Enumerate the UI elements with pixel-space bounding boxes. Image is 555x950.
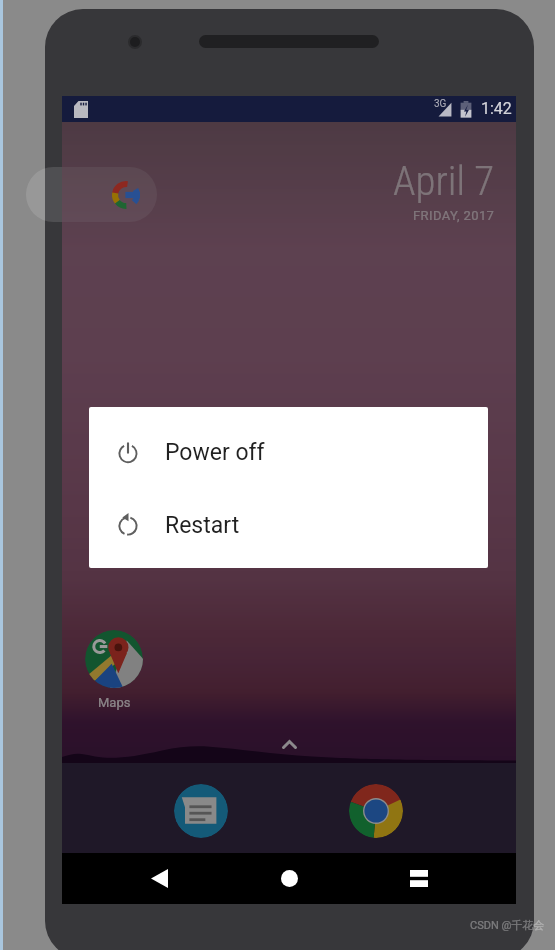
staticText: 3G xyxy=(434,98,447,110)
staticText: Maps xyxy=(98,695,131,710)
button[interactable]: Messages xyxy=(174,784,228,838)
staticText: CSDN @千花会 xyxy=(470,918,545,932)
button[interactable]: Back xyxy=(132,853,186,904)
button[interactable]: Chrome xyxy=(349,784,403,838)
button[interactable]: Home xyxy=(262,853,316,904)
staticText: April 7 xyxy=(393,157,495,205)
button[interactable]: Recent apps xyxy=(392,853,446,904)
staticText: FRIDAY, 2017 xyxy=(413,208,495,223)
staticText: Restart xyxy=(165,512,240,539)
button[interactable] xyxy=(62,96,516,904)
button[interactable]: Google search xyxy=(26,167,157,222)
button[interactable]: Maps xyxy=(85,630,143,688)
staticText: Power off xyxy=(165,439,265,466)
button[interactable]: Power off xyxy=(89,407,488,491)
button[interactable]: Restart xyxy=(89,491,488,568)
staticText: 1:42 xyxy=(481,99,512,118)
button[interactable]: Open app drawer xyxy=(272,733,306,755)
